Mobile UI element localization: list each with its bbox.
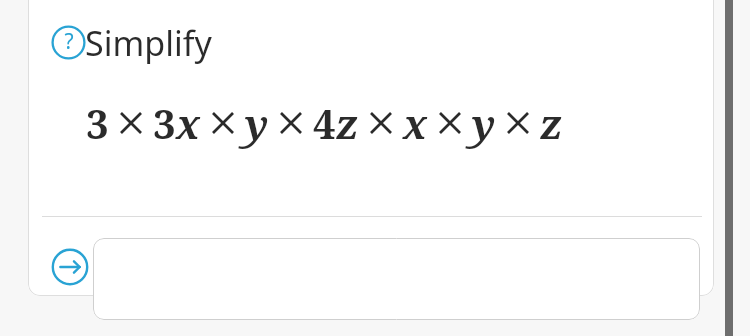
staticText: y [245,96,269,150]
button[interactable]: Submit answer [51,248,89,286]
staticText: ? [64,27,74,56]
staticText: 3 [153,96,176,150]
staticText: Simplify [85,20,212,66]
staticText: 3 [86,96,109,150]
staticText: z [336,96,359,150]
staticText: x [403,96,428,150]
staticText: 4 [313,96,336,150]
staticText: x [176,96,201,150]
button[interactable]: Answer input field [93,238,700,320]
staticText: y [472,96,496,150]
button[interactable]: Help [51,25,86,60]
staticText: z [540,96,563,150]
